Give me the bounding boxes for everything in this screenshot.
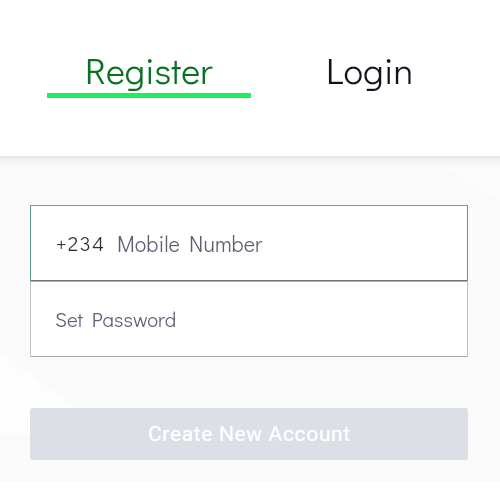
staticText: Register — [85, 46, 213, 93]
button[interactable]: Create New Account — [30, 408, 468, 460]
staticText: +234 — [56, 229, 106, 257]
staticText: Set Password — [55, 306, 177, 333]
button[interactable]: Login — [251, 0, 500, 156]
staticText: Create New Account — [148, 422, 351, 447]
button[interactable]: Set Password — [30, 281, 468, 357]
button[interactable]: Register — [0, 0, 251, 156]
staticText: Mobile Number — [117, 229, 263, 257]
button[interactable]: +234 — [30, 205, 468, 281]
staticText: Login — [326, 46, 414, 94]
